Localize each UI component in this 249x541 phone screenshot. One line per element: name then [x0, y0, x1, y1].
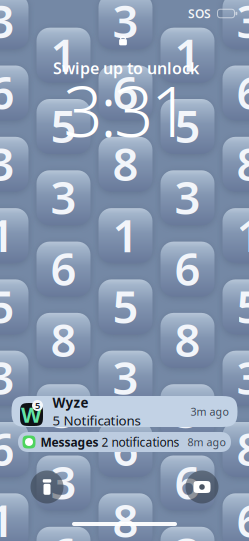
staticText: 5	[236, 276, 249, 336]
staticText: 8m ago	[187, 435, 225, 449]
staticText: 6	[174, 238, 200, 298]
staticText: 5	[0, 276, 14, 336]
staticText: 8	[174, 309, 200, 369]
staticText: 5	[35, 399, 40, 412]
staticText: 6	[236, 490, 249, 541]
staticText: 6	[50, 523, 76, 541]
staticText: 2 notifications	[101, 434, 179, 450]
staticText: 1	[112, 204, 138, 265]
button[interactable]: Messages	[18, 432, 231, 452]
staticText: Wyze	[52, 394, 88, 411]
staticText: 8	[50, 309, 76, 369]
staticText: 3	[50, 167, 76, 227]
staticText: 3:31	[63, 64, 191, 156]
staticText: 5	[174, 381, 200, 441]
staticText: 3	[0, 133, 14, 193]
staticText: 5 Notifications	[52, 411, 140, 429]
button[interactable]: Camera	[185, 470, 218, 503]
button[interactable]: W	[11, 396, 237, 427]
staticText: 6	[112, 62, 138, 122]
staticText: 6	[112, 418, 138, 479]
staticText: 8	[112, 490, 138, 541]
staticText: 6	[236, 62, 249, 122]
staticText: 3	[0, 347, 14, 407]
staticText: SOS	[188, 5, 211, 21]
staticText: 6	[174, 452, 200, 512]
staticText: 3	[174, 167, 200, 227]
staticText: 3	[50, 452, 76, 512]
staticText: 6	[50, 238, 76, 298]
staticText: 3	[236, 0, 249, 51]
staticText: 5	[50, 381, 76, 441]
staticText: 3	[112, 347, 138, 407]
staticText: 5	[50, 95, 76, 156]
staticText: 5	[174, 95, 200, 156]
staticText: 3	[0, 0, 14, 51]
staticText: 3	[174, 523, 200, 541]
staticText: 6	[0, 62, 14, 122]
staticText: 8	[236, 133, 249, 193]
staticText: W	[21, 400, 42, 429]
staticText: 1	[174, 24, 200, 84]
staticText: 6	[0, 418, 14, 479]
staticText: 1	[236, 204, 249, 265]
staticText: 3	[112, 0, 138, 51]
staticText: 1	[50, 24, 76, 84]
button[interactable]: Flashlight	[30, 470, 63, 503]
staticText: 5	[112, 276, 138, 336]
staticText: 3	[236, 347, 249, 407]
staticText: 1	[0, 204, 14, 265]
staticText: Swipe up to unlock	[53, 57, 199, 79]
staticText: 8	[236, 418, 249, 479]
staticText: 3m ago	[190, 404, 228, 419]
staticText: 1	[0, 490, 14, 541]
staticText: 8	[112, 133, 138, 193]
staticText: Messages	[40, 434, 98, 450]
